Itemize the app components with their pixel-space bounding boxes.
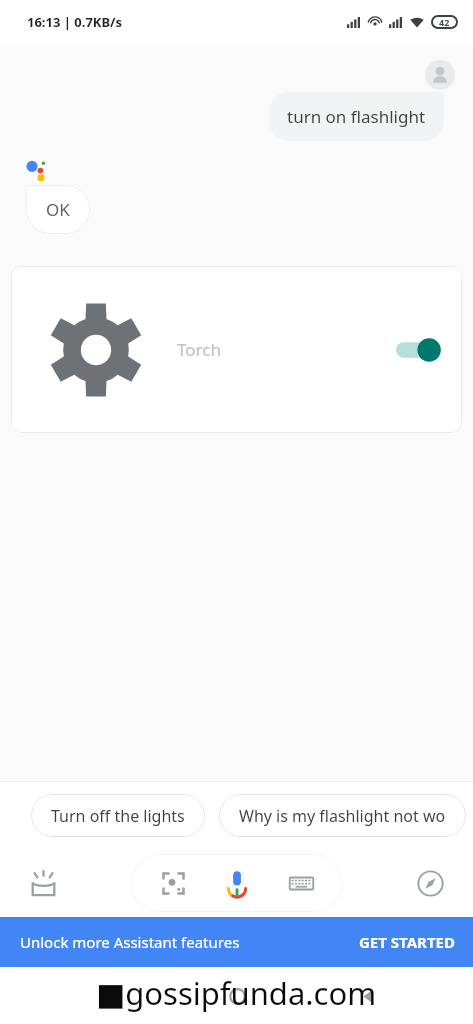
button[interactable]: Snapshot <box>21 861 65 905</box>
button[interactable]: Back <box>343 972 391 1020</box>
button[interactable]: Keyboard <box>279 861 323 905</box>
staticText: turn on flashlight <box>287 105 426 128</box>
staticText: OK <box>46 198 70 221</box>
button[interactable]: Voice search <box>215 861 259 905</box>
button[interactable]: Home <box>213 972 261 1020</box>
staticText: Torch <box>177 338 221 361</box>
button[interactable]: Torch toggle <box>396 337 442 363</box>
button[interactable]: Why is my flashlight not wo <box>219 794 466 837</box>
button[interactable]: Recents <box>82 972 130 1020</box>
staticText: 42 <box>439 16 450 28</box>
button[interactable]: Explore <box>408 861 452 905</box>
button[interactable]: OK <box>26 185 90 234</box>
staticText: Why is my flashlight not wo <box>239 805 446 827</box>
staticText: 16:13 | 0.7KB/s <box>27 13 123 31</box>
button[interactable]: Google Lens <box>151 861 195 905</box>
button[interactable]: turn on flashlight <box>269 92 444 141</box>
staticText: ■gossipfunda.com <box>96 972 377 1014</box>
staticText: Turn off the lights <box>51 805 185 827</box>
button[interactable]: Unlock more Assistant features <box>0 917 473 967</box>
staticText: GET STARTED <box>359 932 455 952</box>
button[interactable]: Torch <box>11 266 462 433</box>
button[interactable]: Turn off the lights <box>31 794 205 837</box>
button[interactable]: Account <box>425 60 455 90</box>
staticText: Unlock more Assistant features <box>20 932 240 952</box>
